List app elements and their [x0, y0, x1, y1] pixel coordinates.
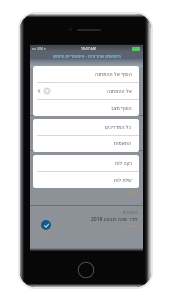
staticText: 8.79335: [123, 210, 138, 215]
staticText: 8.79335: [123, 176, 138, 181]
button[interactable]: אל ההמתנה: [33, 83, 139, 99]
staticText: הוסף מצב: [111, 105, 132, 112]
staticText: נקה לוח: [115, 160, 132, 167]
button[interactable]: מאושרת: [30, 206, 143, 240]
staticText: להזמנה: [126, 190, 138, 194]
staticText: 10:57 AM: [81, 46, 96, 51]
staticText: התאמות: [114, 141, 132, 147]
button[interactable]: Home: [77, 261, 95, 279]
staticText: כל המדריכים: [105, 124, 132, 131]
button[interactable]: שלח לוח: [33, 172, 139, 188]
button[interactable]: הוסף מצב: [33, 100, 139, 116]
staticText: no SIM ▾: [32, 46, 46, 51]
button[interactable]: נקה לוח: [33, 155, 139, 171]
staticText: הוסף אל ההמתנה: [95, 71, 132, 78]
button[interactable]: 8.79335: [30, 172, 143, 206]
staticText: מאושרת: [40, 232, 52, 236]
staticText: חדר שינה מבצע 2019: [91, 182, 138, 189]
staticText: חיפושים אחרונים · היסטוריית חיפוש: [53, 53, 121, 59]
staticText: להזמנה: [126, 224, 138, 228]
button[interactable]: הוסף אל ההמתנה: [33, 66, 139, 82]
staticText: שלח לוח: [114, 177, 132, 184]
staticText: חדר שינה מבצע 2019: [91, 216, 138, 223]
staticText: אל ההמתנה: [107, 88, 132, 95]
button[interactable]: כל המדריכים: [33, 119, 139, 135]
button[interactable]: התאמות: [33, 136, 139, 152]
